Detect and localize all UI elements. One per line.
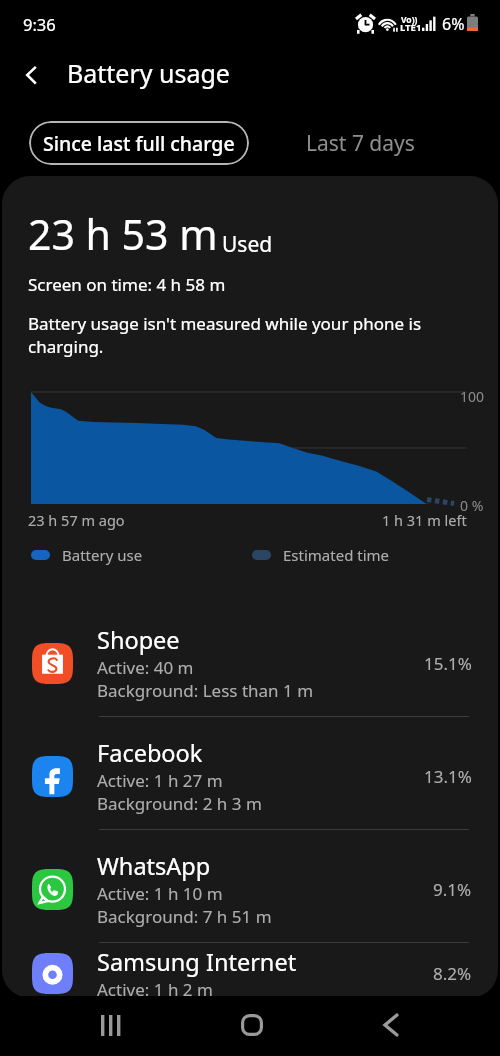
staticText: Shopee — [97, 624, 180, 656]
staticText: Active: 1 h 2 m — [97, 978, 213, 998]
staticText: 100 — [460, 387, 485, 406]
staticText: 15.1% — [424, 652, 472, 675]
staticText: Active: 1 h 27 m — [97, 769, 223, 792]
staticText: 0 % — [460, 496, 484, 515]
staticText: Active: 1 h 10 m — [97, 882, 223, 905]
staticText: Used — [222, 230, 273, 259]
button[interactable]: Recent apps — [72, 996, 152, 1056]
staticText: Facebook — [97, 737, 203, 769]
staticText: Battery usage — [67, 56, 230, 90]
staticText: 9:36 — [23, 13, 56, 35]
button[interactable]: Samsung Internet — [2, 943, 498, 998]
staticText: 9.1% — [433, 878, 472, 901]
button[interactable]: Shopee — [2, 604, 498, 717]
staticText: Battery usage isn't measured while your … — [28, 312, 422, 358]
staticText: Background: 7 h 51 m — [97, 905, 272, 928]
staticText: 6% — [442, 13, 465, 35]
button[interactable]: Last 7 days — [296, 121, 425, 165]
staticText: LTE1 — [400, 21, 422, 34]
staticText: Battery use — [62, 545, 143, 565]
staticText: WhatsApp — [97, 850, 211, 882]
button[interactable]: WhatsApp — [2, 830, 498, 943]
staticText: Estimated time — [283, 545, 390, 565]
staticText: Last 7 days — [306, 129, 415, 158]
staticText: Active: 40 m — [97, 656, 194, 679]
staticText: 23 h 57 m ago — [28, 510, 125, 530]
button[interactable]: Facebook — [2, 717, 498, 830]
button[interactable]: Back — [11, 54, 53, 96]
button[interactable]: Home — [212, 996, 292, 1056]
staticText: Since last full charge — [43, 130, 235, 157]
button[interactable]: Since last full charge — [29, 121, 249, 165]
staticText: Vo)) — [401, 14, 418, 26]
staticText: 13.1% — [424, 765, 472, 788]
staticText: Samsung Internet — [97, 946, 297, 978]
staticText: 23 h 53 m — [28, 206, 218, 262]
staticText: Background: Less than 1 m — [97, 679, 314, 702]
staticText: 1 h 31 m left — [382, 510, 467, 530]
staticText: 8.2% — [433, 962, 472, 985]
staticText: Background: 2 h 3 m — [97, 792, 262, 815]
staticText: Screen on time: 4 h 58 m — [28, 273, 226, 296]
button[interactable]: Back — [351, 996, 431, 1056]
